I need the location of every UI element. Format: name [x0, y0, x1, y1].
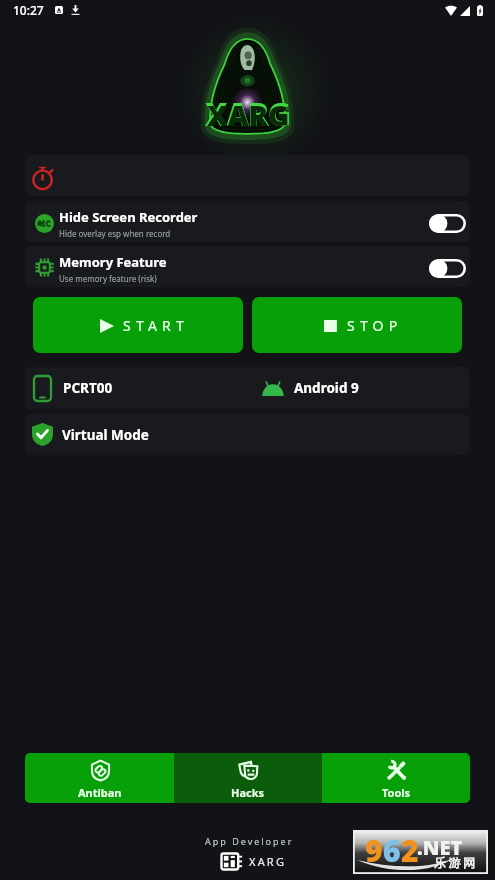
other: Hacks [238, 760, 259, 781]
staticText: 10:27 [13, 2, 44, 18]
staticText: Hacks [231, 785, 265, 800]
button[interactable]: Hide Screen Recorder [25, 201, 470, 242]
other: Tools [385, 760, 408, 781]
staticText: Hide Screen Recorder [59, 208, 198, 226]
other: Timer [32, 165, 54, 189]
staticText: XARG [249, 854, 287, 869]
staticText: Hide overlay esp when record [59, 228, 171, 239]
button[interactable]: Toggle [429, 214, 466, 233]
staticText: 9 [365, 830, 383, 871]
staticText: .NET [417, 834, 463, 861]
staticText: Tools [382, 785, 411, 800]
staticText: START [123, 316, 189, 335]
staticText: Android 9 [294, 379, 359, 397]
button[interactable]: Virtual Mode [25, 414, 470, 455]
button[interactable]: START [33, 297, 243, 353]
button[interactable]: Hacks [174, 753, 322, 803]
staticText: Use memory feature (risk) [59, 273, 157, 284]
button[interactable]: PCRT00 [25, 367, 470, 409]
staticText: App Developer [205, 835, 294, 847]
button[interactable]: STOP [252, 297, 462, 353]
staticText: XARG [207, 95, 290, 134]
button[interactable]: Memory Feature [25, 246, 470, 287]
staticText: XARG [205, 93, 290, 135]
other: Antiban [91, 760, 110, 781]
staticText: STOP [347, 316, 403, 335]
staticText: 2 [401, 830, 419, 871]
staticText: PCRT00 [63, 379, 113, 397]
staticText: Virtual Mode [62, 426, 149, 444]
button[interactable]: Tools [322, 753, 470, 803]
staticText: 6 [383, 830, 401, 871]
button[interactable]: Timer [25, 155, 470, 196]
staticText: Antiban [78, 785, 122, 800]
staticText: Memory Feature [59, 253, 167, 271]
button[interactable]: Toggle [429, 259, 466, 278]
staticText: 乐游网 [434, 855, 478, 870]
button[interactable]: Antiban [25, 753, 174, 803]
